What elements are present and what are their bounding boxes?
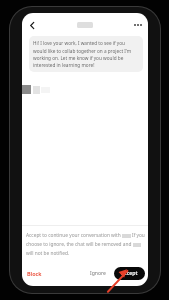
button[interactable]: More options bbox=[130, 17, 145, 32]
button[interactable]: Back bbox=[24, 17, 40, 33]
staticText: Ignore bbox=[90, 270, 106, 277]
staticText: If you bbox=[132, 232, 145, 239]
staticText: Accept to continue your conversation wit… bbox=[26, 232, 121, 239]
staticText: choose to ignore, the chat will be remov… bbox=[26, 241, 132, 248]
staticText: Hi! I love your work, I wanted to see if… bbox=[33, 40, 139, 68]
staticText: Block bbox=[27, 270, 42, 277]
button[interactable]: Hi! I love your work, I wanted to see if… bbox=[29, 36, 143, 72]
staticText: Accept bbox=[121, 270, 138, 277]
button[interactable]: Accept bbox=[114, 267, 145, 280]
staticText: will not be notified. bbox=[26, 250, 70, 257]
button[interactable]: Ignore bbox=[88, 268, 108, 279]
button[interactable]: Block bbox=[25, 268, 44, 279]
